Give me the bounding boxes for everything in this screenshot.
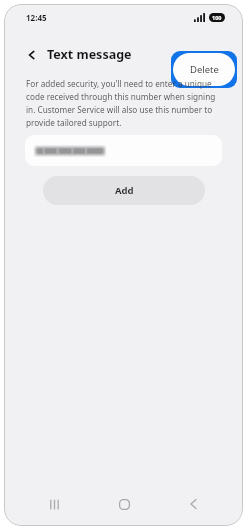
button[interactable]: Delete [171,51,237,88]
staticText: For added security, you'll need to enter… [26,78,221,129]
button[interactable] [25,135,222,166]
button[interactable]: Back [24,46,132,63]
other: Back [24,47,40,63]
staticText: Add [115,184,134,197]
staticText: Delete [190,63,219,76]
button[interactable]: Home [104,484,144,524]
staticText: Text message [47,46,132,63]
button[interactable]: Add [43,176,205,205]
staticText: 12:45 [26,12,47,23]
button[interactable]: Back [173,484,213,524]
button[interactable]: Recents [34,484,74,524]
staticText: 100 [212,14,222,21]
